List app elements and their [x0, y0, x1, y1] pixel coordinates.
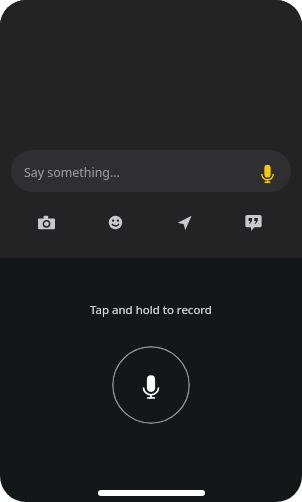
- button[interactable]: Voice input: [253, 157, 281, 185]
- button[interactable]: Say something...: [11, 150, 291, 192]
- button[interactable]: Quote: [219, 192, 288, 252]
- button[interactable]: Record: [112, 346, 190, 424]
- staticText: Say something...: [24, 164, 120, 181]
- button[interactable]: Location: [150, 192, 219, 252]
- button[interactable]: Camera: [12, 192, 81, 252]
- staticText: Tap and hold to record: [90, 302, 212, 318]
- button[interactable]: Emoji: [81, 192, 150, 252]
